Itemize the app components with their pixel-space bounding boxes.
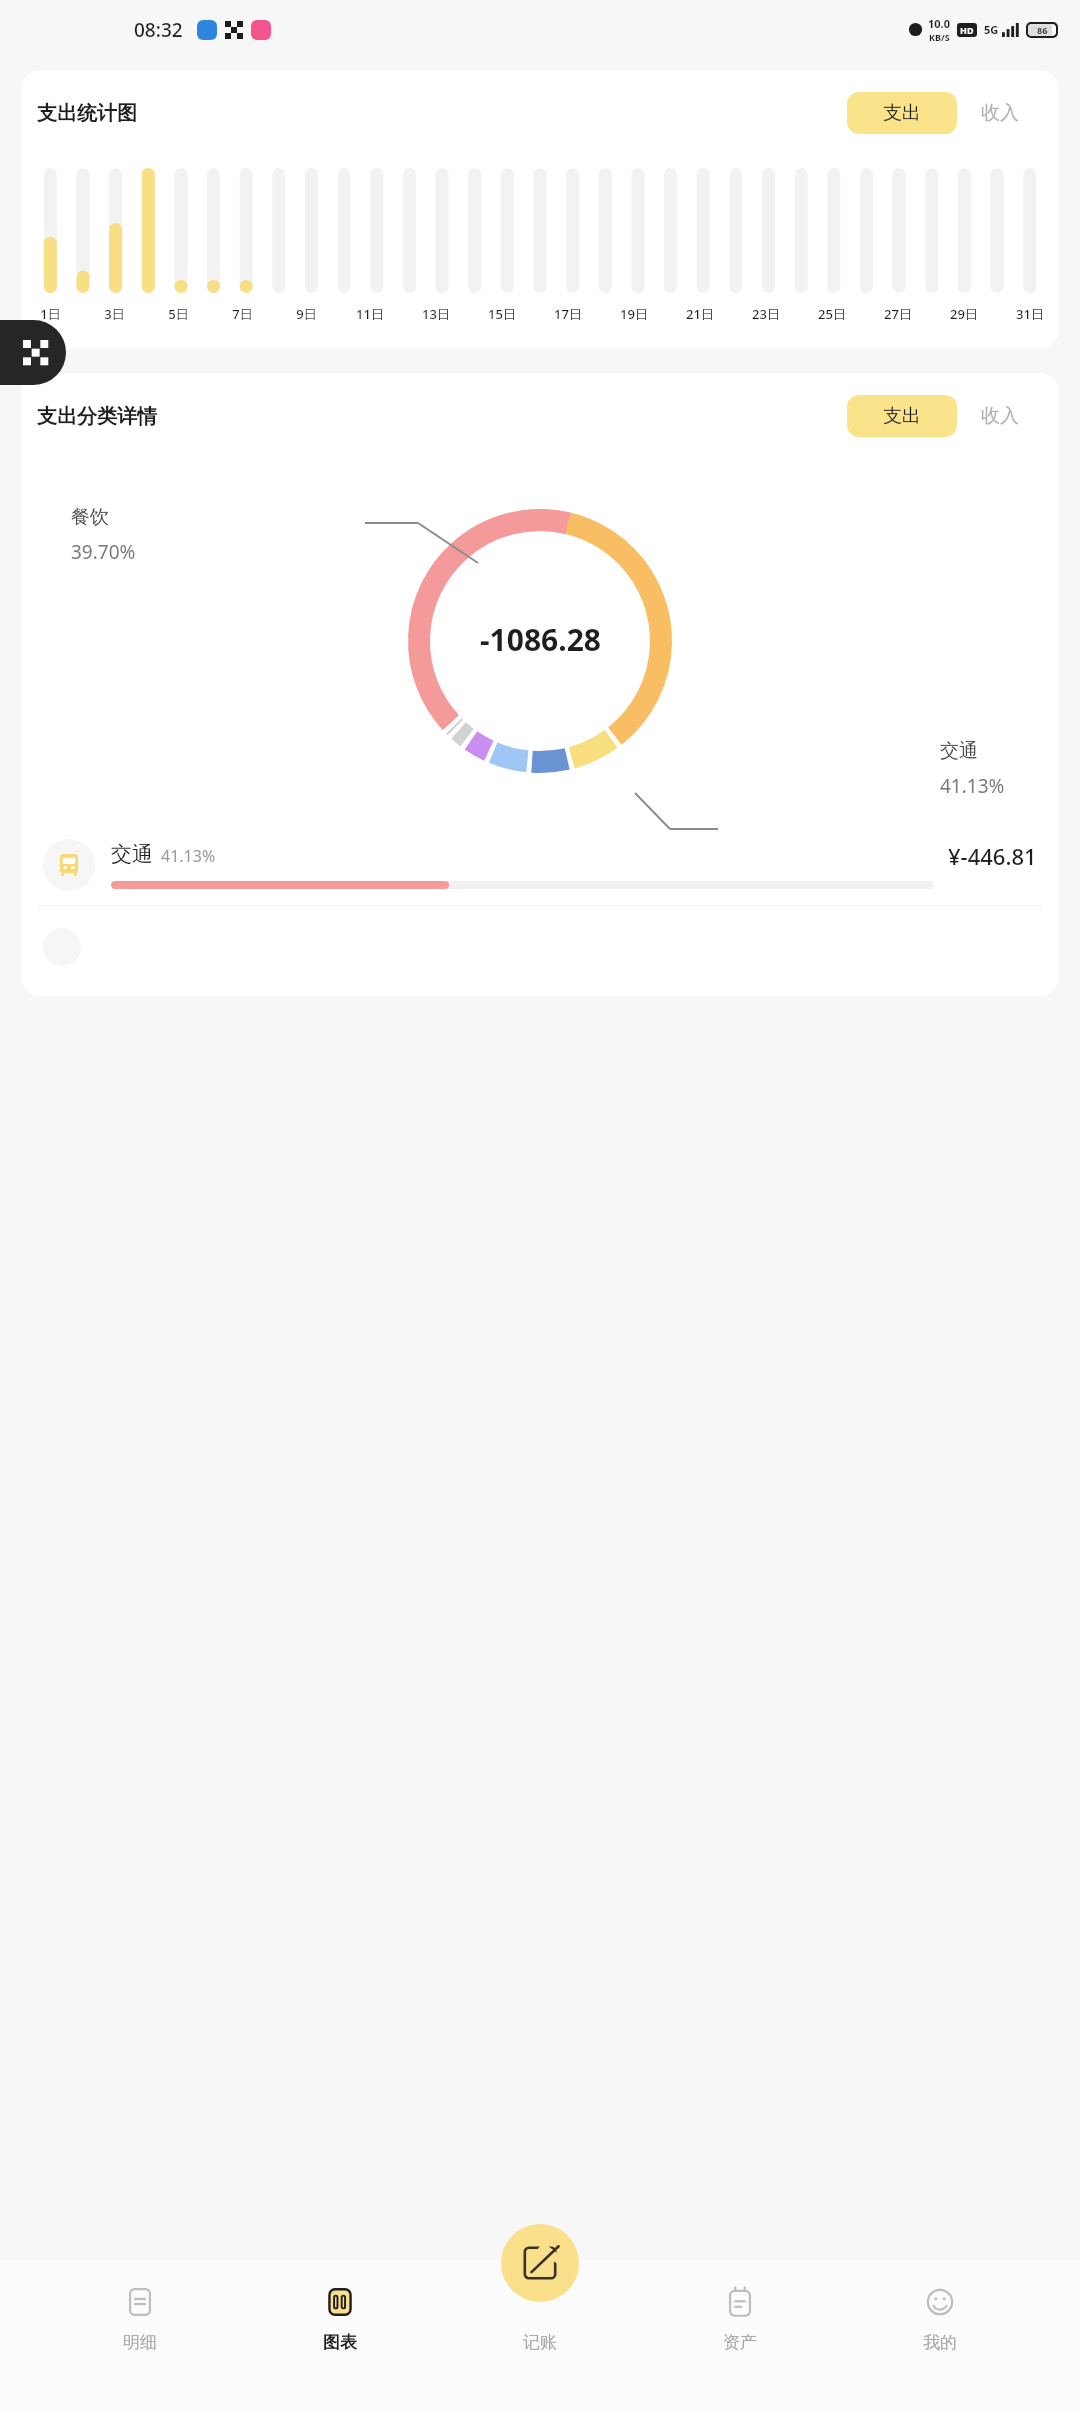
staticText: ¥-446.81 [948,841,1037,871]
button[interactable]: 收入 [957,92,1043,134]
staticText: 交通 [940,739,978,763]
staticText: 13日 [422,305,450,323]
staticText: 收入 [981,101,1019,125]
button[interactable]: 交通 [21,825,1059,905]
staticText: 39.70% [71,539,136,565]
staticText: 27日 [884,305,912,323]
staticText: 3日 [104,305,125,323]
staticText: 餐饮 [71,505,109,529]
button[interactable]: 明细 [80,2276,200,2359]
staticText: 收入 [981,404,1019,428]
staticText: 7日 [232,305,253,323]
button[interactable]: 支出 [847,92,957,134]
staticText: 支出 [883,101,921,125]
staticText: 资产 [723,2332,757,2353]
staticText: 9日 [296,305,317,323]
staticText: 5G [984,22,999,37]
button[interactable]: 资产 [680,2276,800,2359]
staticText: 23日 [752,305,780,323]
staticText: 明细 [123,2332,157,2353]
staticText: 11日 [356,305,384,323]
staticText: 29日 [950,305,978,323]
staticText: 5日 [168,305,189,323]
staticText: 支出 [883,404,921,428]
staticText: 21日 [686,305,714,323]
button[interactable]: 记账 [480,2276,600,2359]
staticText: 19日 [620,305,648,323]
button[interactable]: 我的 [880,2276,1000,2359]
staticText: 图表 [323,2332,357,2353]
staticText: 41.13% [940,773,1005,799]
staticText: 17日 [554,305,582,323]
button[interactable]: 收入 [957,395,1043,437]
staticText: 10.0 [928,16,950,31]
staticText: -1086.28 [480,619,601,660]
staticText: 25日 [818,305,846,323]
staticText: 86 [1037,24,1048,36]
staticText: KB/S [929,31,950,43]
staticText: 1日 [40,305,61,323]
staticText: 41.13% [161,845,216,867]
button[interactable]: 记账 [501,2224,579,2302]
button[interactable]: 图表 [280,2276,400,2359]
staticText: 支出分类详情 [37,404,157,429]
staticText: 交通 [111,841,153,867]
staticText: 15日 [488,305,516,323]
staticText: HD [960,24,974,36]
button[interactable]: 支出 [847,395,957,437]
staticText: 我的 [923,2332,957,2353]
staticText: 31日 [1016,305,1044,323]
staticText: 记账 [523,2332,557,2353]
staticText: 支出统计图 [37,101,137,126]
staticText: 08:32 [134,17,183,43]
button[interactable]: Floating shortcut [0,320,66,385]
